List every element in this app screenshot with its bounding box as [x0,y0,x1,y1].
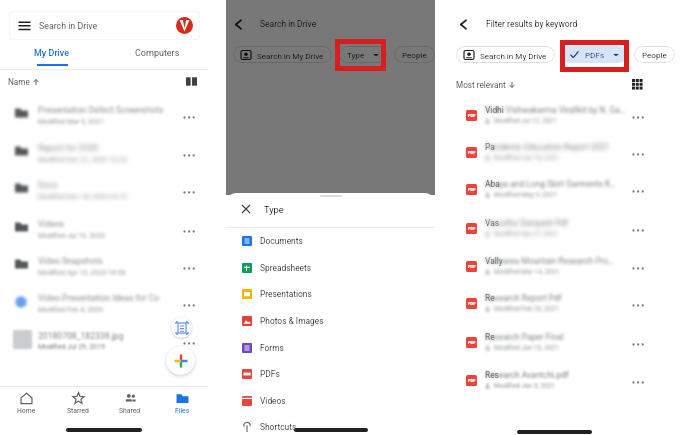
button[interactable]: More options [183,262,196,275]
button[interactable]: Shortcuts [226,414,435,435]
staticText: Modified Jun 18, 2021 [494,154,560,162]
button[interactable]: PDF [435,173,680,207]
button[interactable]: Shared [104,387,156,419]
staticText: Computers [135,48,180,59]
staticText: Search in Drive [39,21,98,31]
button[interactable]: PDF [435,287,680,321]
button[interactable]: Back [232,18,245,31]
staticText: PDF [468,378,476,383]
button[interactable]: Spreadsheets [226,255,435,281]
button[interactable]: Files [156,387,208,419]
button[interactable]: Photos & Images [226,308,435,334]
button[interactable]: Account [176,17,193,34]
button[interactable]: PDF [435,99,680,133]
staticText: Documents [260,236,303,246]
button[interactable]: Videos [226,388,435,414]
button[interactable]: 20180708_182338.jpg [0,323,226,357]
button[interactable]: More options [183,225,196,238]
button[interactable]: Search in My Drive [456,46,555,63]
button[interactable]: Most relevant [456,78,516,92]
staticText: Report for 2020 [38,143,98,153]
staticText: Vallyarea Mountain Research Pro… [485,256,614,266]
staticText: Modified Mar 3, 2021 [38,118,104,126]
staticText: Research Report Pdf [485,293,562,303]
button[interactable]: More options [632,185,645,198]
button[interactable]: Forms [226,335,435,361]
button[interactable]: Menu [9,11,200,40]
button[interactable]: People [394,46,435,63]
staticText: Vally [485,256,503,266]
button[interactable]: Type [339,46,387,63]
button[interactable]: Video Snapshots [0,248,226,282]
button[interactable]: More options [632,224,645,237]
staticText: Shortcuts [260,422,297,432]
button[interactable]: PDF [435,250,680,284]
staticText: PDFs [585,50,605,59]
staticText: Search in Drive [260,19,317,29]
button[interactable]: Home [0,387,52,419]
staticText: Pa [485,142,495,152]
button[interactable]: Name [8,75,40,89]
button[interactable]: More options [632,338,645,351]
button[interactable]: More options [183,299,196,312]
button[interactable]: More options [183,149,196,162]
staticText: Modified Apr 13, 2020 16:08 [38,269,126,277]
button[interactable]: Scan document [171,317,192,338]
button[interactable]: More options [632,148,645,161]
button[interactable]: More options [632,299,645,312]
button[interactable]: More options [632,111,645,124]
button[interactable]: More options [183,337,196,350]
other: Menu [18,19,31,32]
staticText: Modified Jan 5, 2021 [494,382,556,390]
button[interactable]: PDFs [226,361,435,387]
staticText: Forms [260,343,284,353]
staticText: Videos [38,219,65,229]
staticText: People [402,50,427,59]
staticText: Video Presentation Ideas for Co [38,293,160,303]
button[interactable]: Switch to grid view [186,76,197,87]
staticText: Modified Jan 16, 2021 [494,344,560,352]
button[interactable]: Close [241,197,284,221]
button[interactable]: Presentation Defect Screenshots [0,97,226,131]
staticText: PDF [468,226,476,231]
button[interactable]: Video Presentation Ideas for Co [0,285,226,319]
staticText: Shared [119,407,141,415]
button[interactable]: PDFs [562,46,627,63]
button[interactable]: Videos [0,211,226,245]
button[interactable]: PDF [435,326,680,360]
staticText: Modified May 9, 2021 [494,191,557,199]
button[interactable]: Report for 2020 [0,135,226,169]
button[interactable]: Back [457,18,470,31]
button[interactable]: More options [632,376,645,389]
button[interactable]: My Drive [22,45,82,61]
staticText: People [642,50,667,59]
button[interactable]: PDF [435,364,680,398]
staticText: PDF [468,113,476,118]
button[interactable]: Search in My Drive [233,46,332,63]
button[interactable]: More options [183,111,196,124]
staticText: Vasudha Sampark Pdf [485,218,568,228]
staticText: Vidhi [485,105,504,115]
button[interactable]: People [634,46,675,63]
other: Close [241,204,251,214]
button[interactable]: PDF [435,212,680,246]
button[interactable]: PDF [435,136,680,170]
button[interactable]: Starred [52,387,104,419]
button[interactable]: More options [632,262,645,275]
staticText: Search in My Drive [257,51,324,60]
button[interactable]: Computers [122,45,192,61]
button[interactable]: Create new file [166,346,195,375]
staticText: PDF [468,340,476,345]
staticText: My Drive [34,48,70,59]
button[interactable]: Presentations [226,281,435,307]
staticText: PDF [468,264,476,269]
staticText: 20180708_182338.jpg [38,331,124,341]
button[interactable]: Documents [226,228,435,254]
staticText: Modified Jul 10, 2020 [38,232,105,240]
button[interactable]: Docs [0,172,226,206]
button[interactable]: More options [183,186,196,199]
button[interactable]: Switch to grid view [632,79,643,90]
staticText: Name [8,77,30,87]
staticText: Videos [260,396,286,406]
staticText: Type [264,204,284,215]
